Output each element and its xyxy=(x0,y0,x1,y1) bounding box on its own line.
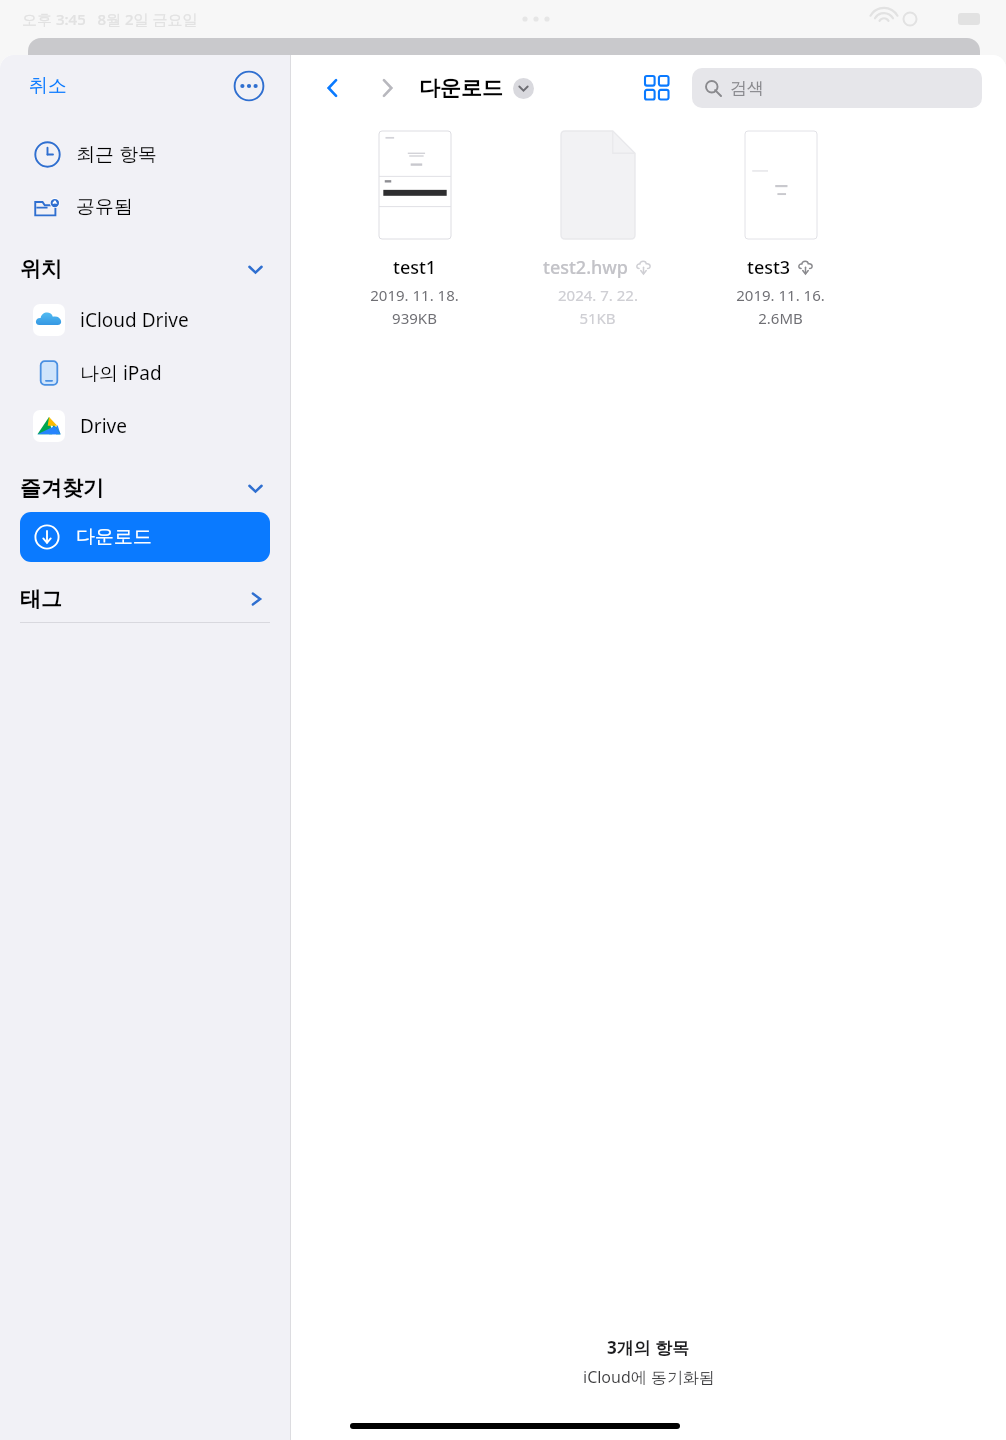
staticText: iCloud Drive xyxy=(80,307,189,333)
staticText: 공유됨 xyxy=(76,195,133,219)
button[interactable]: 격자 보기 xyxy=(636,67,678,109)
staticText: test3 xyxy=(747,255,791,280)
button[interactable]: 다운로드 xyxy=(20,512,270,562)
button[interactable]: 나의 iPad xyxy=(0,346,290,399)
button[interactable]: 최근 항목 xyxy=(0,127,290,180)
button[interactable]: 검색 xyxy=(692,68,982,108)
button[interactable]: 태그 xyxy=(0,576,290,622)
staticText: 오후 3:45 8월 2일 금요일 xyxy=(22,9,198,29)
button[interactable]: 공유됨 xyxy=(0,180,290,233)
button[interactable]: 다운로드 xyxy=(419,69,534,107)
staticText: 2019. 11. 18. xyxy=(370,285,459,305)
staticText: iCloud에 동기화됨 xyxy=(583,1366,715,1388)
button[interactable]: 뒤로 xyxy=(313,68,353,108)
staticText: test1 xyxy=(393,255,437,280)
staticText: Drive xyxy=(80,413,127,439)
staticText: 다운로드 xyxy=(419,75,503,101)
button[interactable]: 위치 xyxy=(0,247,290,291)
button[interactable]: test1 xyxy=(343,129,486,328)
staticText: 3개의 항목 xyxy=(607,1336,690,1359)
staticText: 2019. 11. 16. xyxy=(736,285,825,305)
staticText: 나의 iPad xyxy=(80,360,162,386)
button[interactable]: test3 xyxy=(709,129,852,328)
staticText: 취소 xyxy=(29,74,67,98)
button[interactable]: 즐겨찾기 xyxy=(0,466,290,510)
button[interactable]: 더 보기 xyxy=(233,70,265,102)
button[interactable]: 앞으로 xyxy=(367,68,407,108)
button[interactable]: test2.hwp xyxy=(526,129,669,328)
staticText: 태그 xyxy=(20,586,62,612)
button[interactable]: 취소 xyxy=(27,70,69,102)
staticText: test2.hwp xyxy=(543,255,629,280)
staticText: 검색 xyxy=(730,78,764,99)
button[interactable]: iCloud Drive xyxy=(0,293,290,346)
staticText: 최근 항목 xyxy=(76,141,157,167)
staticText: 2.6MB xyxy=(758,308,803,328)
staticText: 위치 xyxy=(20,256,62,282)
staticText: 51KB xyxy=(579,308,616,328)
button[interactable]: Drive xyxy=(0,399,290,452)
staticText: 다운로드 xyxy=(76,525,152,549)
staticText: 즐겨찾기 xyxy=(20,475,104,501)
staticText: 939KB xyxy=(392,308,437,328)
staticText: 2024. 7. 22. xyxy=(558,285,638,305)
